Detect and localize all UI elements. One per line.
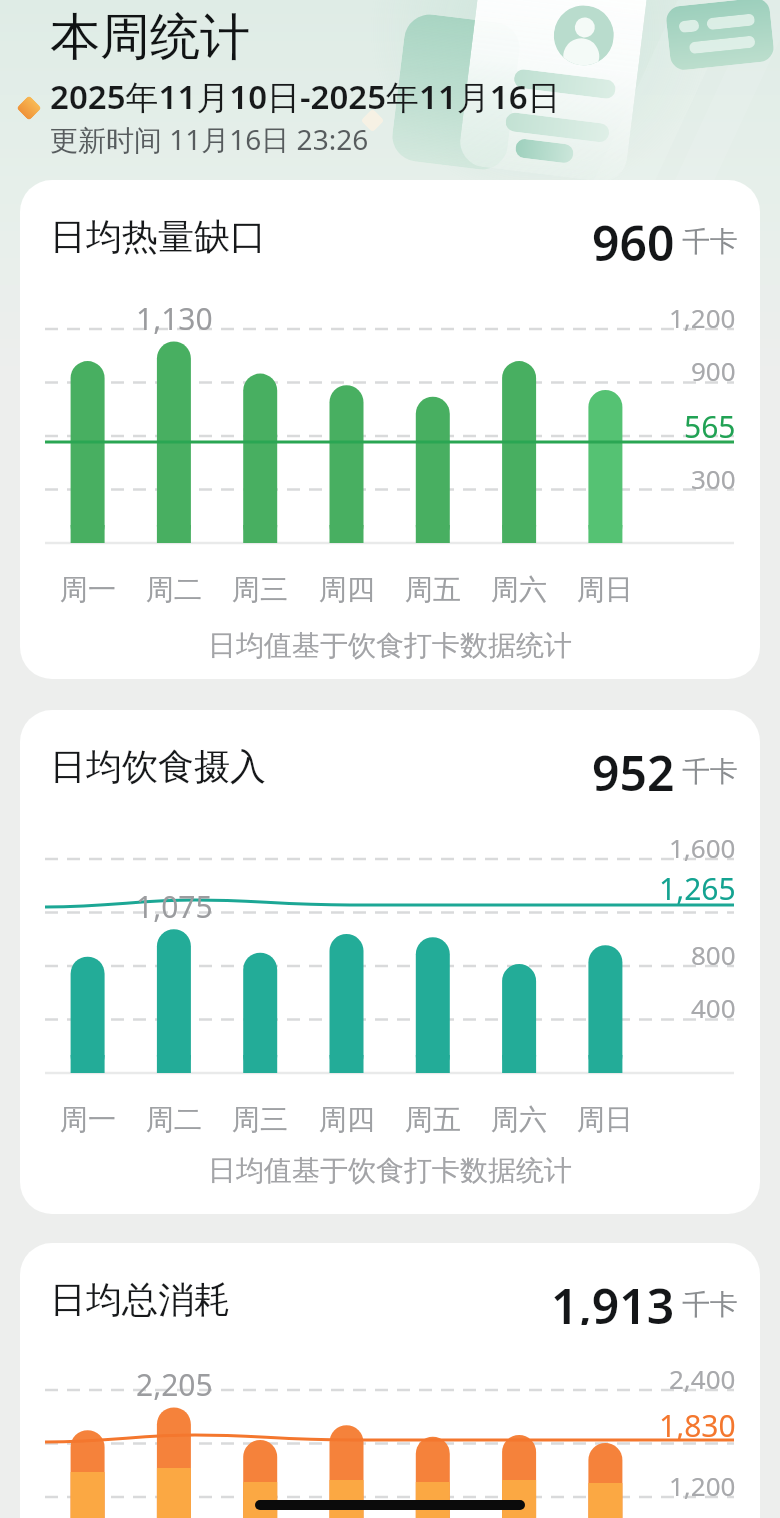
staticText: 千卡 [682, 754, 738, 789]
staticText: 1,075 [136, 886, 213, 926]
staticText: 2,400 [669, 1361, 736, 1396]
staticText: 1,200 [669, 300, 736, 335]
staticText: 日均值基于饮食打卡数据统计 [208, 628, 572, 662]
staticText: 800 [691, 937, 736, 972]
staticText: 周四 [319, 1102, 375, 1136]
staticText: 日均值基于饮食打卡数据统计 [208, 1153, 572, 1187]
staticText: 周一 [60, 572, 116, 606]
staticText: 周二 [146, 1102, 202, 1136]
staticText: 2,205 [136, 1364, 213, 1404]
button[interactable]: 日均总消耗 [20, 1243, 760, 1518]
button[interactable]: 日均饮食摄入 [20, 710, 760, 1214]
staticText: 565 [684, 406, 736, 447]
staticText: 千卡 [682, 1287, 738, 1322]
staticText: 1,265 [659, 868, 736, 909]
staticText: 周六 [491, 572, 547, 606]
staticText: 日均饮食摄入 [50, 744, 266, 789]
staticText: 周三 [232, 572, 288, 606]
staticText: 1,600 [669, 830, 736, 865]
staticText: 周五 [405, 572, 461, 606]
staticText: 400 [691, 990, 736, 1025]
staticText: 本周统计 [50, 6, 250, 62]
staticText: 周四 [319, 572, 375, 606]
staticText: 周日 [577, 572, 633, 606]
staticText: 1,913 [551, 1273, 675, 1325]
button[interactable]: 日均热量缺口 [20, 180, 760, 679]
staticText: 1,830 [659, 1405, 736, 1446]
staticText: 周一 [60, 1102, 116, 1136]
staticText: 周三 [232, 1102, 288, 1136]
staticText: 2025年11月10日-2025年11月16日 [50, 74, 561, 116]
staticText: 日均总消耗 [50, 1277, 230, 1322]
staticText: 1,200 [669, 1468, 736, 1503]
staticText: 960 [592, 210, 675, 262]
staticText: 1,130 [136, 298, 213, 338]
staticText: 日均热量缺口 [50, 214, 266, 259]
staticText: 更新时间 11月16日 23:26 [50, 120, 369, 154]
staticText: 周日 [577, 1102, 633, 1136]
staticText: 900 [691, 353, 736, 388]
staticText: 周六 [491, 1102, 547, 1136]
staticText: 300 [691, 461, 736, 496]
staticText: 周二 [146, 572, 202, 606]
staticText: 千卡 [682, 224, 738, 259]
staticText: 952 [592, 740, 675, 792]
staticText: 周五 [405, 1102, 461, 1136]
